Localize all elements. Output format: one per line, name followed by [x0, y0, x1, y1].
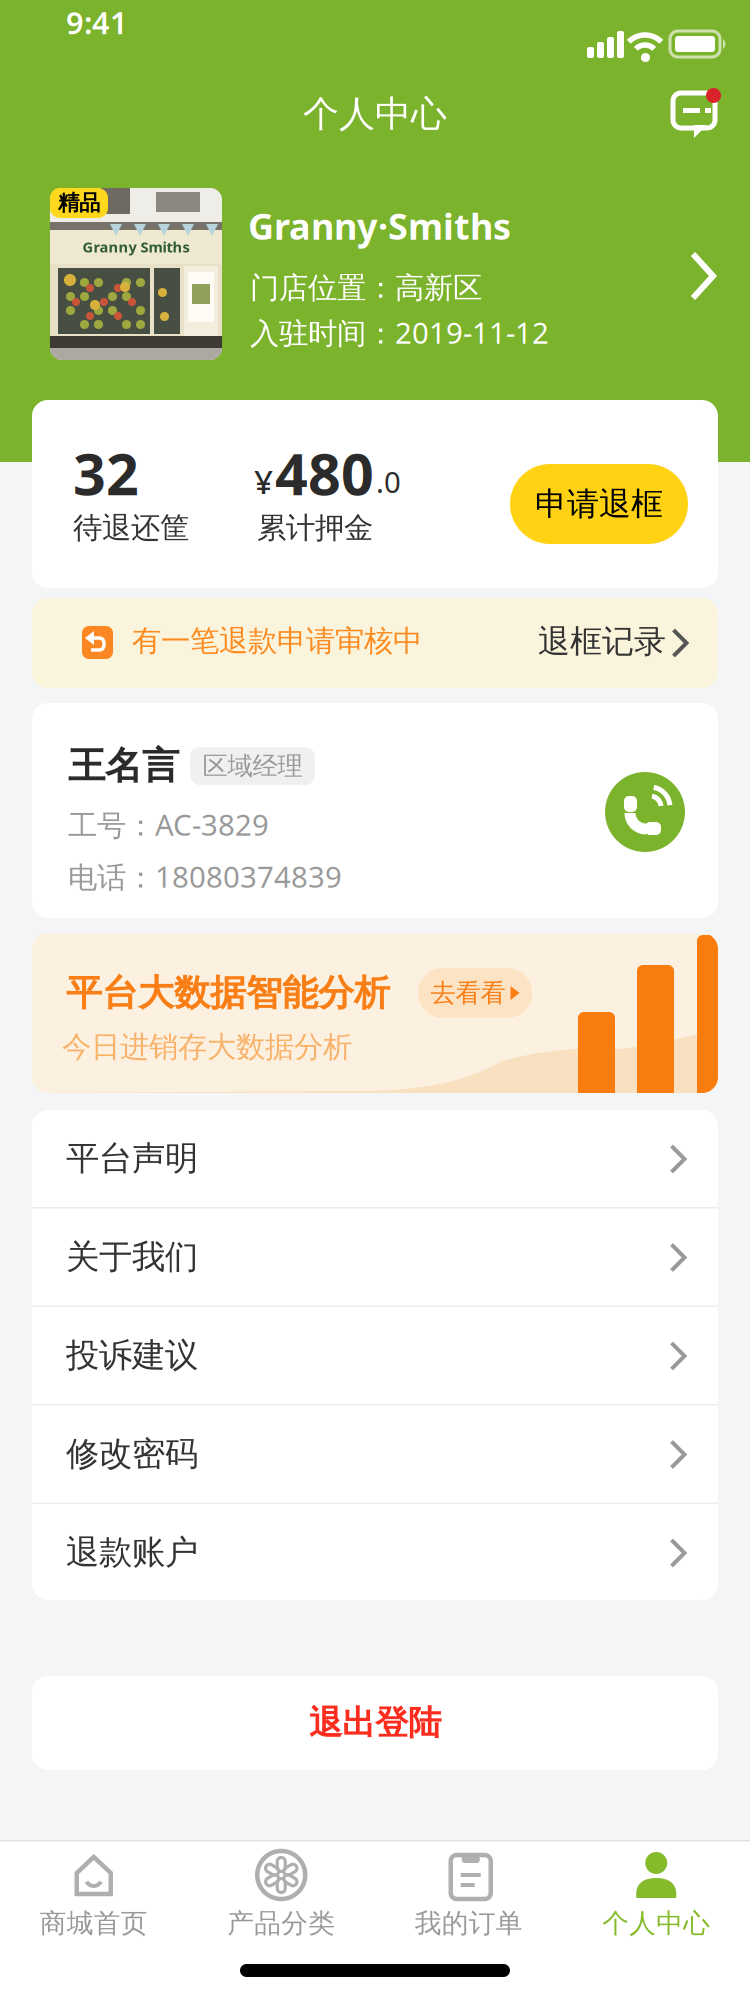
- staticText: 平台大数据智能分析: [66, 971, 390, 1015]
- staticText: 工号：AC-3829: [68, 805, 269, 844]
- staticText: 有一笔退款申请审核中: [132, 623, 422, 659]
- staticText: 待退还筐: [73, 510, 189, 546]
- staticText: 产品分类: [227, 1907, 335, 1940]
- staticText: 退款账户: [66, 1532, 198, 1573]
- staticText: 门店位置：高新区: [250, 270, 482, 306]
- button[interactable]: 退出登陆: [32, 1676, 718, 1770]
- button[interactable]: 个人中心: [562, 1852, 750, 1940]
- staticText: 投诉建议: [66, 1335, 198, 1376]
- staticText: 9:41: [66, 2, 128, 43]
- button[interactable]: 投诉建议: [32, 1307, 718, 1404]
- staticText: 电话：18080374839: [68, 857, 342, 896]
- button[interactable]: 平台大数据智能分析: [32, 933, 718, 1093]
- button[interactable]: 申请退框: [510, 464, 688, 544]
- staticText: 累计押金: [257, 510, 373, 546]
- button[interactable]: 平台声明: [32, 1110, 718, 1207]
- button[interactable]: 消息: [668, 84, 724, 144]
- staticText: ¥: [254, 459, 273, 503]
- staticText: 王名言: [68, 743, 179, 789]
- staticText: 今日进销存大数据分析: [62, 1029, 352, 1065]
- staticText: 个人中心: [303, 92, 447, 136]
- button[interactable]: 拨打电话: [605, 772, 685, 852]
- button[interactable]: 我的订单: [375, 1852, 562, 1940]
- staticText: 退出登陆: [309, 1702, 441, 1743]
- staticText: 32: [73, 435, 139, 511]
- staticText: .0: [376, 462, 401, 501]
- button[interactable]: 产品分类: [187, 1852, 375, 1940]
- staticText: 申请退框: [535, 484, 663, 524]
- staticText: 区域经理: [202, 750, 302, 781]
- staticText: 退框记录: [538, 622, 666, 661]
- staticText: 我的订单: [415, 1907, 523, 1940]
- button[interactable]: 门店信息: [0, 188, 750, 360]
- button[interactable]: 商城首页: [0, 1852, 187, 1940]
- button[interactable]: 修改密码: [32, 1405, 718, 1502]
- staticText: 去看看: [430, 977, 505, 1008]
- staticText: 个人中心: [602, 1907, 710, 1940]
- staticText: 精品: [58, 190, 100, 216]
- button[interactable]: 关于我们: [32, 1208, 718, 1305]
- staticText: 修改密码: [66, 1433, 198, 1474]
- staticText: Granny Smiths: [82, 237, 189, 256]
- staticText: 480: [275, 435, 374, 511]
- button[interactable]: 退款账户: [32, 1504, 718, 1601]
- staticText: 商城首页: [40, 1907, 148, 1940]
- staticText: 关于我们: [66, 1236, 198, 1277]
- staticText: 平台声明: [66, 1138, 198, 1179]
- button[interactable]: 有一笔退款申请审核中: [32, 598, 718, 688]
- staticText: 入驻时间：2019-11-12: [250, 313, 549, 352]
- staticText: Granny·Smiths: [248, 202, 511, 250]
